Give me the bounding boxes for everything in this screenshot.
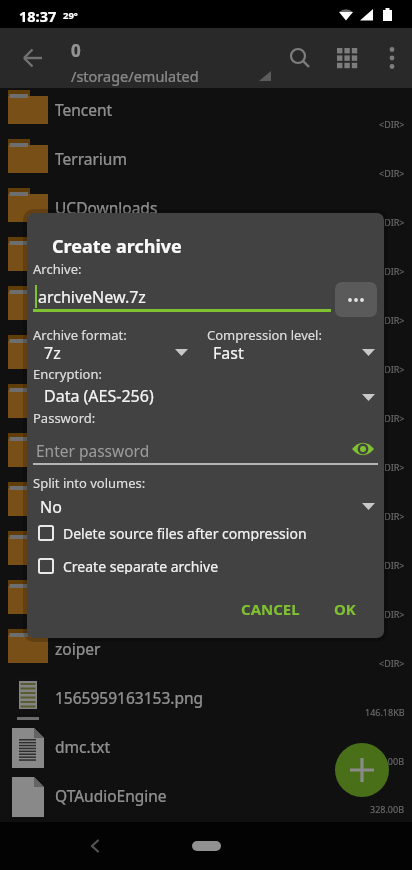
staticText: 0 xyxy=(71,39,81,62)
staticText: 1565959163153.png xyxy=(55,687,204,708)
staticText: Delete source files after compression xyxy=(63,524,307,541)
staticText: Compression level: xyxy=(207,326,322,344)
staticText: VideoShow xyxy=(55,344,136,365)
staticText: OK xyxy=(334,599,356,619)
button[interactable] xyxy=(278,36,322,80)
staticText: Data (AES-256) xyxy=(44,385,154,407)
staticText: Split into volumes: xyxy=(33,474,146,492)
button[interactable]: ZArchiver xyxy=(0,578,412,627)
staticText: Create separate archive xyxy=(63,557,219,574)
button[interactable]: Create separate archive xyxy=(38,557,219,574)
button[interactable]: Fast xyxy=(213,342,377,366)
button[interactable] xyxy=(325,36,369,80)
staticText: archiveNew.7z xyxy=(38,286,146,308)
button[interactable]: Data (AES-256) xyxy=(44,385,377,409)
button[interactable]: 1565959163153.png xyxy=(0,676,412,725)
staticText: UCDownloads xyxy=(55,197,158,218)
staticText: 100.00B xyxy=(370,755,405,767)
button[interactable]: No xyxy=(40,496,377,520)
staticText: Password: xyxy=(33,409,96,427)
button[interactable]: OK xyxy=(325,593,365,625)
staticText: 328.00B xyxy=(370,803,405,815)
staticText: <DIR> xyxy=(379,510,405,522)
button[interactable]: Viber xyxy=(0,284,412,333)
staticText: ViralMate xyxy=(55,393,125,414)
staticText: Viber xyxy=(55,295,93,316)
staticText: CANCEL xyxy=(241,599,300,619)
staticText: Create archive xyxy=(52,234,182,259)
staticText: <DIR> xyxy=(379,118,405,130)
staticText: <DIR> xyxy=(379,412,405,424)
button[interactable] xyxy=(335,282,377,317)
button[interactable] xyxy=(335,743,389,797)
staticText: <DIR> xyxy=(379,363,405,375)
staticText: Xender xyxy=(55,491,108,512)
button[interactable]: VideoShow xyxy=(0,333,412,382)
staticText: dmc.txt xyxy=(55,736,111,757)
staticText: 29° xyxy=(63,9,78,22)
staticText: WhatsApp xyxy=(55,442,130,463)
staticText: VidMate xyxy=(55,246,115,267)
button[interactable]: YouWave xyxy=(0,529,412,578)
staticText: <DIR> xyxy=(379,461,405,473)
staticText: Archive format: xyxy=(33,326,127,344)
staticText: 146.18KB xyxy=(365,706,405,718)
staticText: Enter password xyxy=(36,440,150,461)
button[interactable]: Delete source files after compression xyxy=(38,524,307,541)
button[interactable]: ViralMate xyxy=(0,382,412,431)
button[interactable] xyxy=(347,434,379,464)
staticText: <DIR> xyxy=(379,265,405,277)
staticText: <DIR> xyxy=(379,608,405,620)
button[interactable]: zoiper xyxy=(0,627,412,676)
staticText: Archive: xyxy=(33,260,82,278)
button[interactable]: QTAudioEngine xyxy=(0,774,412,822)
staticText: <DIR> xyxy=(379,314,405,326)
staticText: <DIR> xyxy=(379,559,405,571)
button[interactable]: Xender xyxy=(0,480,412,529)
staticText: 7z xyxy=(44,342,61,364)
button[interactable]: Tencent xyxy=(0,88,412,137)
staticText: No xyxy=(40,496,62,518)
staticText: Encryption: xyxy=(33,365,102,383)
button[interactable]: CANCEL xyxy=(226,593,314,625)
staticText: zoiper xyxy=(55,638,101,659)
staticText: <DIR> xyxy=(379,216,405,228)
button[interactable]: dmc.txt xyxy=(0,725,412,774)
staticText: Terrarium xyxy=(55,148,127,169)
staticText: Fast xyxy=(213,342,244,364)
button[interactable] xyxy=(192,841,221,851)
staticText: /storage/emulated xyxy=(71,66,199,86)
staticText: QTAudioEngine xyxy=(55,785,167,806)
button[interactable]: VidMate xyxy=(0,235,412,284)
staticText: 18:37 xyxy=(19,6,57,26)
button[interactable] xyxy=(11,36,55,80)
staticText: <DIR> xyxy=(379,657,405,669)
button[interactable]: Terrarium xyxy=(0,137,412,186)
staticText: <DIR> xyxy=(379,167,405,179)
button[interactable] xyxy=(372,38,412,78)
button[interactable]: 7z xyxy=(44,342,204,366)
button[interactable]: WhatsApp xyxy=(0,431,412,480)
staticText: Tencent xyxy=(55,99,113,120)
button[interactable]: UCDownloads xyxy=(0,186,412,235)
